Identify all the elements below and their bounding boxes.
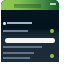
other: Active [50,54,54,58]
other: Active [50,29,54,33]
button[interactable] [1,0,59,10]
